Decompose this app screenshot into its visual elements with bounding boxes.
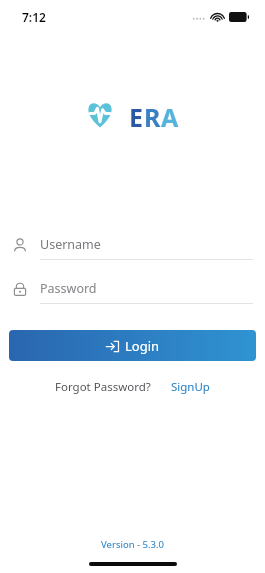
staticText: Forgot Password? bbox=[55, 379, 151, 395]
button[interactable]: SignUp bbox=[169, 376, 212, 398]
staticText: Password bbox=[40, 280, 97, 297]
staticText: R bbox=[144, 100, 161, 129]
staticText: Login bbox=[125, 337, 160, 355]
button[interactable]: Login bbox=[9, 330, 256, 361]
staticText: SignUp bbox=[171, 379, 210, 395]
staticText: Version - 5.3.0 bbox=[101, 538, 164, 551]
staticText: Username bbox=[40, 236, 101, 253]
staticText: 7:12 bbox=[22, 9, 46, 25]
staticText: E bbox=[129, 100, 144, 129]
staticText: A bbox=[161, 100, 179, 129]
button[interactable]: Forgot Password? bbox=[53, 376, 153, 398]
